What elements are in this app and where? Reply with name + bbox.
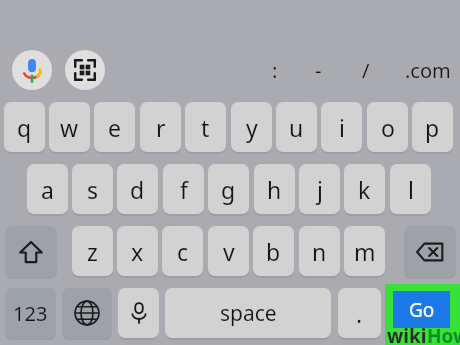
button[interactable]: x <box>117 226 158 276</box>
button[interactable]: / <box>353 52 379 88</box>
staticText: 123 <box>13 300 48 327</box>
button[interactable]: o <box>367 102 408 152</box>
button[interactable]: d <box>117 164 158 214</box>
button[interactable]: p <box>412 102 453 152</box>
button[interactable]: : <box>262 52 288 88</box>
staticText: d <box>130 174 145 205</box>
button[interactable]: e <box>94 102 135 152</box>
button[interactable]: 123 <box>5 288 56 338</box>
staticText: y <box>246 112 258 143</box>
staticText: a <box>41 174 54 205</box>
button[interactable]: j <box>299 164 340 214</box>
button[interactable]: Scan code <box>65 50 105 90</box>
button[interactable]: r <box>140 102 181 152</box>
staticText: b <box>266 236 281 267</box>
button[interactable]: Change keyboard language <box>62 288 112 338</box>
button[interactable]: m <box>344 226 385 276</box>
staticText: i <box>339 112 345 143</box>
button[interactable]: Shift <box>5 226 57 277</box>
button[interactable]: w <box>49 102 90 152</box>
button[interactable]: Go <box>393 291 450 328</box>
button[interactable]: n <box>299 226 340 276</box>
staticText: q <box>17 112 32 143</box>
staticText: e <box>108 112 121 143</box>
staticText: : <box>272 57 278 84</box>
button[interactable]: h <box>254 164 295 214</box>
button[interactable]: . <box>338 288 381 338</box>
button[interactable]: v <box>208 226 249 276</box>
button[interactable]: g <box>208 164 249 214</box>
staticText: x <box>131 236 144 267</box>
button[interactable]: t <box>185 102 226 152</box>
staticText: space <box>220 299 277 328</box>
staticText: m <box>354 236 376 267</box>
staticText: - <box>315 57 322 84</box>
button[interactable]: k <box>344 164 385 214</box>
staticText: p <box>425 112 440 143</box>
button[interactable]: c <box>162 226 203 276</box>
button[interactable]: s <box>72 164 113 214</box>
staticText: .com <box>405 57 451 84</box>
staticText: f <box>180 174 188 205</box>
button[interactable]: - <box>305 52 331 88</box>
button[interactable]: u <box>276 102 317 152</box>
staticText: z <box>87 236 98 267</box>
button[interactable]: Voice typing <box>118 288 159 338</box>
staticText: l <box>408 174 414 205</box>
staticText: v <box>223 236 235 267</box>
staticText: o <box>381 112 395 143</box>
button[interactable]: .com <box>400 52 456 88</box>
staticText: g <box>221 174 236 205</box>
button[interactable]: b <box>253 226 294 276</box>
staticText: wiki <box>387 323 427 345</box>
staticText: How <box>427 323 460 345</box>
button[interactable]: z <box>72 226 113 276</box>
button[interactable]: Backspace <box>404 226 456 277</box>
button[interactable]: f <box>163 164 204 214</box>
staticText: t <box>201 112 210 143</box>
staticText: k <box>358 174 371 205</box>
button[interactable]: i <box>321 102 362 152</box>
staticText: r <box>156 112 166 143</box>
button[interactable]: q <box>4 102 45 152</box>
staticText: j <box>317 174 323 205</box>
button[interactable]: space <box>165 288 331 338</box>
staticText: s <box>87 174 99 205</box>
staticText: Go <box>409 297 435 323</box>
staticText: w <box>60 112 79 143</box>
staticText: h <box>267 174 282 205</box>
button[interactable]: l <box>390 164 431 214</box>
staticText: c <box>177 236 189 267</box>
staticText: / <box>362 57 370 84</box>
staticText: n <box>312 236 327 267</box>
button[interactable]: a <box>27 164 68 214</box>
staticText: . <box>356 298 363 329</box>
button[interactable]: Voice input <box>12 50 52 90</box>
button[interactable]: y <box>231 102 272 152</box>
staticText: u <box>289 112 304 143</box>
